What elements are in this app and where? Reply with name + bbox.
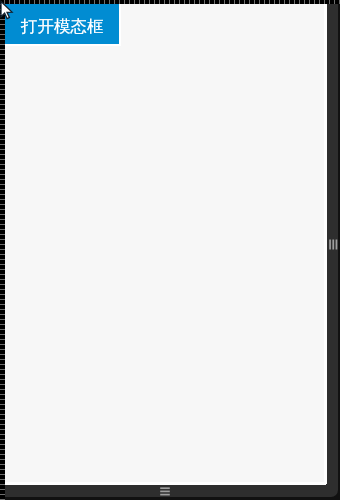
button[interactable]: Resize preview width xyxy=(326,0,338,500)
button[interactable]: Resize preview height xyxy=(0,484,326,500)
button[interactable]: 打开模态框 xyxy=(5,4,119,44)
staticText: 打开模态框 xyxy=(21,16,104,37)
